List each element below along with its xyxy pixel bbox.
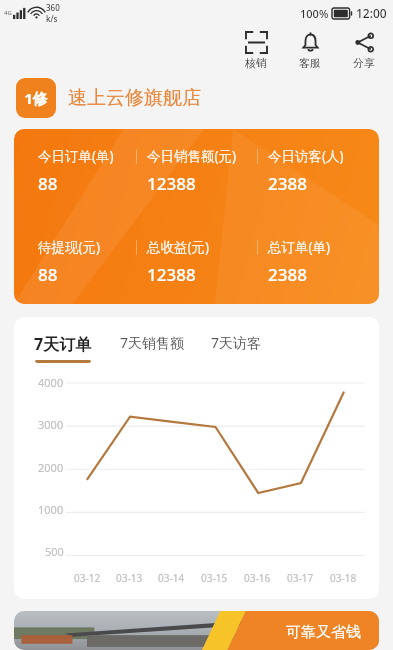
staticText: 03-13	[116, 571, 143, 585]
staticText: 总订单(单)	[268, 238, 331, 256]
staticText: 7天销售额	[120, 333, 185, 352]
staticText: 4000	[38, 375, 64, 390]
staticText: 待提现(元)	[38, 238, 101, 256]
staticText: 500	[45, 544, 64, 559]
staticText: 1000	[38, 502, 64, 517]
button[interactable]: 客服	[295, 30, 325, 72]
button[interactable]: 7天销售额	[120, 333, 185, 360]
staticText: 总收益(元)	[147, 238, 210, 256]
button[interactable]: 7天订单	[34, 333, 92, 363]
staticText: 3000	[38, 417, 64, 432]
staticText: 88	[38, 172, 58, 195]
staticText: 2000	[38, 460, 64, 475]
staticText: 1修	[24, 88, 48, 108]
staticText: 03-14	[158, 571, 185, 585]
staticText: 88	[38, 263, 58, 286]
staticText: 今日订单(单)	[38, 147, 114, 165]
staticText: k/s	[46, 13, 58, 24]
staticText: 03-16	[244, 571, 271, 585]
button[interactable]: 可靠又省钱	[14, 611, 379, 650]
staticText: 今日访客(人)	[268, 147, 344, 165]
staticText: 7天访客	[211, 333, 262, 352]
staticText: 03-17	[287, 571, 314, 585]
button[interactable]: 1修	[16, 78, 393, 118]
staticText: 分享	[353, 56, 375, 70]
staticText: 2388	[268, 172, 307, 195]
staticText: 可靠又省钱	[286, 623, 361, 642]
staticText: 7天订单	[34, 333, 92, 355]
button[interactable]: 今日订单(单)	[14, 129, 379, 304]
staticText: 4G	[4, 9, 12, 17]
button[interactable]: 7天访客	[211, 333, 262, 360]
button[interactable]: 分享	[349, 30, 379, 72]
staticText: 03-12	[74, 571, 101, 585]
staticText: 12388	[147, 263, 196, 286]
staticText: 03-18	[330, 571, 357, 585]
staticText: 客服	[299, 56, 321, 70]
staticText: 核销	[245, 56, 267, 70]
staticText: 2388	[268, 263, 307, 286]
button[interactable]: 核销	[241, 30, 271, 72]
staticText: 今日销售额(元)	[147, 147, 237, 165]
staticText: 12388	[147, 172, 196, 195]
staticText: 12:00	[356, 5, 387, 21]
staticText: 03-15	[201, 571, 228, 585]
staticText: 360	[46, 2, 60, 13]
staticText: 100%	[300, 6, 329, 21]
staticText: 速上云修旗舰店	[68, 86, 201, 110]
